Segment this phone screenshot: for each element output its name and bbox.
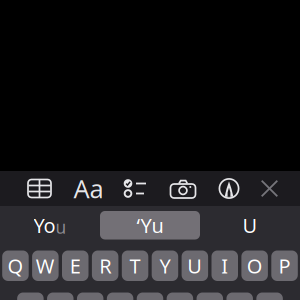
staticText: U [187, 252, 202, 279]
staticText: Yo [33, 212, 55, 239]
button[interactable]: U [182, 250, 208, 281]
button[interactable]: Markup [209, 171, 249, 206]
button[interactable]: I [211, 250, 238, 281]
staticText: T [129, 252, 140, 279]
button[interactable]: Yo [0, 211, 100, 239]
button[interactable]: F [107, 292, 133, 300]
staticText: E [70, 252, 81, 279]
button[interactable]: S [47, 292, 74, 300]
button[interactable]: K [226, 292, 253, 300]
staticText: U [242, 212, 257, 239]
button[interactable]: L [256, 292, 283, 300]
staticText: I [221, 252, 228, 279]
button[interactable]: Table [15, 171, 64, 206]
button[interactable]: J [197, 292, 223, 300]
staticText: P [279, 252, 291, 279]
button[interactable]: Insert photo [157, 171, 209, 206]
staticText: Q [7, 252, 23, 279]
button[interactable]: Q [2, 250, 29, 281]
button[interactable]: U [200, 211, 300, 239]
button[interactable]: D [77, 292, 103, 300]
staticText: Y [159, 252, 170, 279]
button[interactable]: P [271, 250, 298, 281]
button[interactable]: W [32, 250, 59, 281]
staticText: W [36, 252, 55, 279]
button[interactable]: Dismiss [249, 171, 290, 206]
button[interactable]: ‘Yu [100, 211, 200, 239]
staticText: ‘Yu [136, 212, 163, 239]
button[interactable]: Y [152, 250, 178, 281]
button[interactable]: T [122, 250, 148, 281]
button[interactable]: G [137, 292, 163, 300]
button[interactable]: Text format [64, 171, 113, 206]
button[interactable]: Checklist [113, 171, 157, 206]
button[interactable]: O [241, 250, 268, 281]
button[interactable]: E [62, 250, 88, 281]
button[interactable]: A [17, 292, 44, 300]
staticText: O [247, 252, 263, 279]
button[interactable]: H [167, 292, 193, 300]
staticText: Aa [73, 172, 103, 205]
staticText: u [55, 215, 66, 238]
button[interactable]: R [92, 250, 118, 281]
staticText: R [99, 252, 111, 279]
